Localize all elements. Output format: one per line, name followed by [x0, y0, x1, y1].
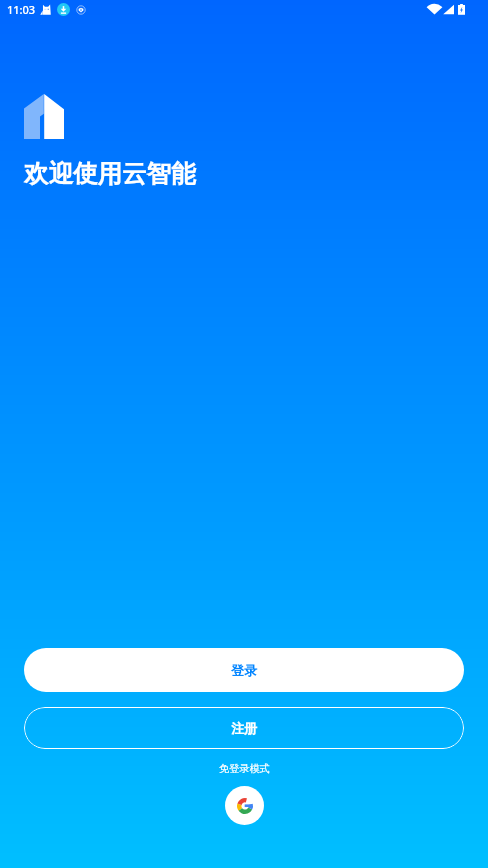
staticText: 11:03 — [7, 2, 36, 17]
staticText: 免登录模式 — [219, 762, 270, 775]
staticText: 注册 — [231, 720, 257, 736]
button[interactable]: Sign in with Google — [225, 786, 264, 825]
staticText: 登录 — [231, 662, 257, 678]
button[interactable]: 免登录模式 — [209, 761, 280, 776]
button[interactable]: 注册 — [24, 707, 464, 749]
button[interactable]: 登录 — [24, 648, 464, 692]
staticText: 欢迎使用云智能 — [24, 158, 196, 189]
